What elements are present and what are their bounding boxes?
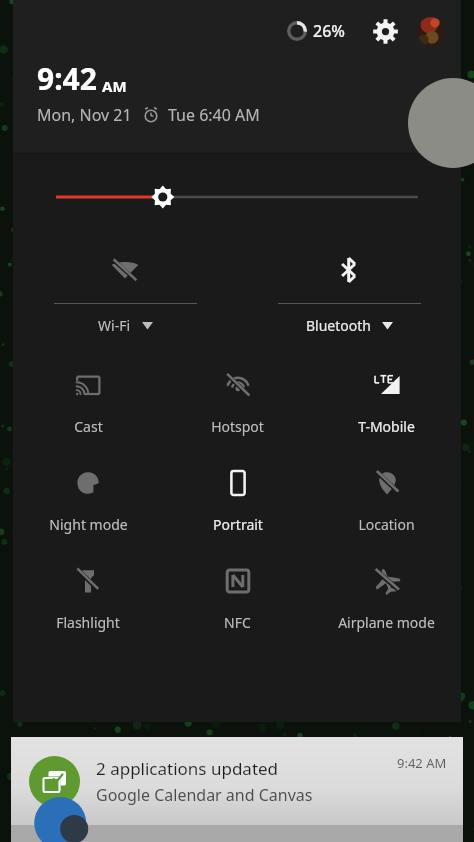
staticText: AM bbox=[102, 76, 127, 96]
button[interactable]: Location bbox=[312, 461, 461, 536]
staticText: Bluetooth bbox=[306, 316, 371, 335]
staticText: 9:42 AM bbox=[397, 754, 447, 772]
staticText: Google Calendar and Canvas bbox=[96, 784, 313, 806]
staticText: Location bbox=[358, 515, 415, 534]
button[interactable]: 2 applications updated bbox=[11, 737, 463, 825]
button[interactable]: Bluetooth bbox=[237, 248, 461, 337]
staticText: Cast bbox=[74, 417, 103, 436]
button[interactable] bbox=[11, 825, 463, 842]
button[interactable]: Edit tiles bbox=[409, 92, 447, 130]
staticText: Night mode bbox=[49, 515, 128, 534]
button[interactable]: Brightness bbox=[13, 182, 461, 212]
button[interactable]: Wi-Fi bbox=[13, 248, 237, 337]
button[interactable]: Hotspot bbox=[163, 363, 312, 438]
button[interactable]: Cast bbox=[13, 363, 163, 438]
staticText: 9:42 bbox=[37, 58, 97, 99]
button[interactable]: NFC bbox=[163, 559, 312, 634]
button[interactable]: Portrait bbox=[163, 461, 312, 536]
staticText: Flashlight bbox=[56, 613, 120, 632]
staticText: T-Mobile bbox=[358, 417, 415, 436]
button[interactable]: Airplane mode bbox=[312, 559, 461, 634]
button[interactable]: Flashlight bbox=[13, 559, 163, 634]
button[interactable]: Night mode bbox=[13, 461, 163, 536]
staticText: Wi-Fi bbox=[98, 316, 131, 335]
button[interactable]: User profile bbox=[413, 13, 449, 49]
button[interactable]: Settings bbox=[365, 11, 405, 51]
staticText: Portrait bbox=[213, 515, 263, 534]
staticText: 26% bbox=[313, 20, 345, 42]
staticText: Mon, Nov 21 bbox=[37, 104, 132, 126]
staticText: Hotspot bbox=[211, 417, 264, 436]
button[interactable]: T-Mobile bbox=[312, 363, 461, 438]
staticText: NFC bbox=[224, 613, 251, 632]
staticText: Tue 6:40 AM bbox=[168, 104, 260, 126]
staticText: 2 applications updated bbox=[96, 757, 279, 780]
staticText: Airplane mode bbox=[338, 613, 435, 632]
button[interactable]: 26% bbox=[283, 14, 349, 48]
